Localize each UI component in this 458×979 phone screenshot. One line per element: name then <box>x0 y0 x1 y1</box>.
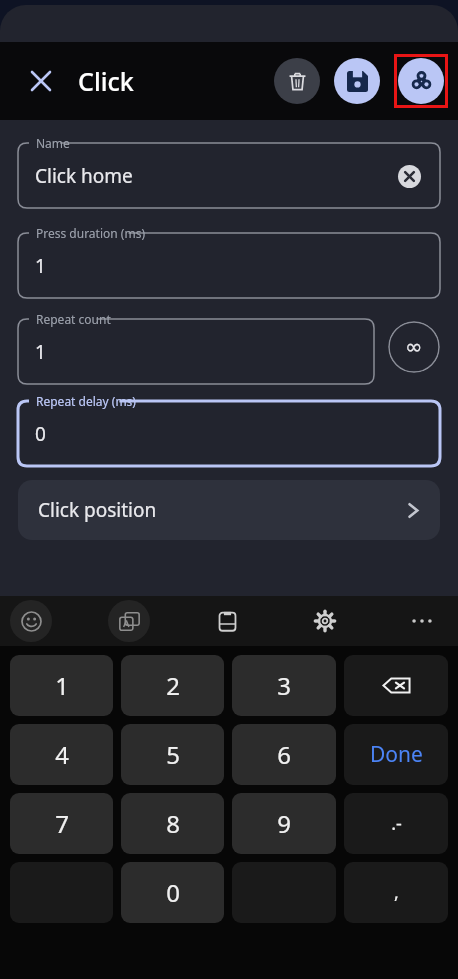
staticText: 0 <box>166 876 180 909</box>
staticText: 8 <box>166 807 180 840</box>
button[interactable]: Backspace <box>344 655 448 716</box>
staticText: Repeat delay (ms) <box>36 393 136 409</box>
button[interactable]: 6 <box>232 724 336 785</box>
staticText: Done <box>370 740 423 769</box>
button[interactable]: Infinite repeat <box>388 321 440 373</box>
staticText: 0 <box>35 421 46 447</box>
staticText: 1 <box>35 339 46 365</box>
button[interactable]: Press duration (ms) <box>18 224 440 298</box>
button[interactable]: 5 <box>121 724 224 785</box>
staticText: 6 <box>277 738 291 771</box>
button[interactable]: Clear <box>392 159 426 193</box>
button[interactable]: 7 <box>10 793 113 854</box>
button[interactable]: Repeat count <box>18 310 374 384</box>
button[interactable]: 0 <box>121 862 224 923</box>
button[interactable]: Webhook <box>398 58 444 104</box>
staticText: 3 <box>277 669 291 702</box>
staticText: .- <box>391 811 402 836</box>
staticText: 1 <box>55 669 69 702</box>
button[interactable]: 3 <box>232 655 336 716</box>
staticText: 5 <box>166 738 180 771</box>
button[interactable]: 8 <box>121 793 224 854</box>
button[interactable]: 1 <box>10 655 113 716</box>
button[interactable]: 4 <box>10 724 113 785</box>
button[interactable]: More options <box>402 601 442 641</box>
staticText: 7 <box>55 807 69 840</box>
button[interactable]: Close <box>20 60 62 102</box>
button[interactable]: 2 <box>121 655 224 716</box>
button[interactable]: , <box>344 862 448 923</box>
button[interactable]: Name <box>18 134 440 208</box>
staticText: 2 <box>166 669 180 702</box>
staticText: Repeat count <box>36 311 111 327</box>
button[interactable]: 9 <box>232 793 336 854</box>
button[interactable]: .- <box>344 793 448 854</box>
staticText: Click <box>78 64 134 98</box>
button[interactable]: Save <box>334 58 380 104</box>
button[interactable]: Clipboard <box>206 600 248 642</box>
staticText: 9 <box>277 807 291 840</box>
button[interactable]: Translate <box>108 600 150 642</box>
staticText: Press duration (ms) <box>36 225 145 241</box>
staticText: 1 <box>35 253 46 279</box>
button[interactable]: Delete <box>274 58 320 104</box>
button[interactable]: Settings <box>304 600 346 642</box>
button[interactable]: Click position <box>18 480 440 540</box>
button[interactable]: Emoji <box>10 600 52 642</box>
staticText: ∞ <box>405 335 423 359</box>
staticText: Click position <box>38 497 157 523</box>
staticText: 4 <box>55 738 69 771</box>
staticText: Name <box>36 135 70 151</box>
staticText: Click home <box>35 163 133 189</box>
button[interactable]: Repeat delay (ms) <box>18 392 440 466</box>
button[interactable]: Done <box>344 724 448 785</box>
staticText: , <box>394 880 399 905</box>
